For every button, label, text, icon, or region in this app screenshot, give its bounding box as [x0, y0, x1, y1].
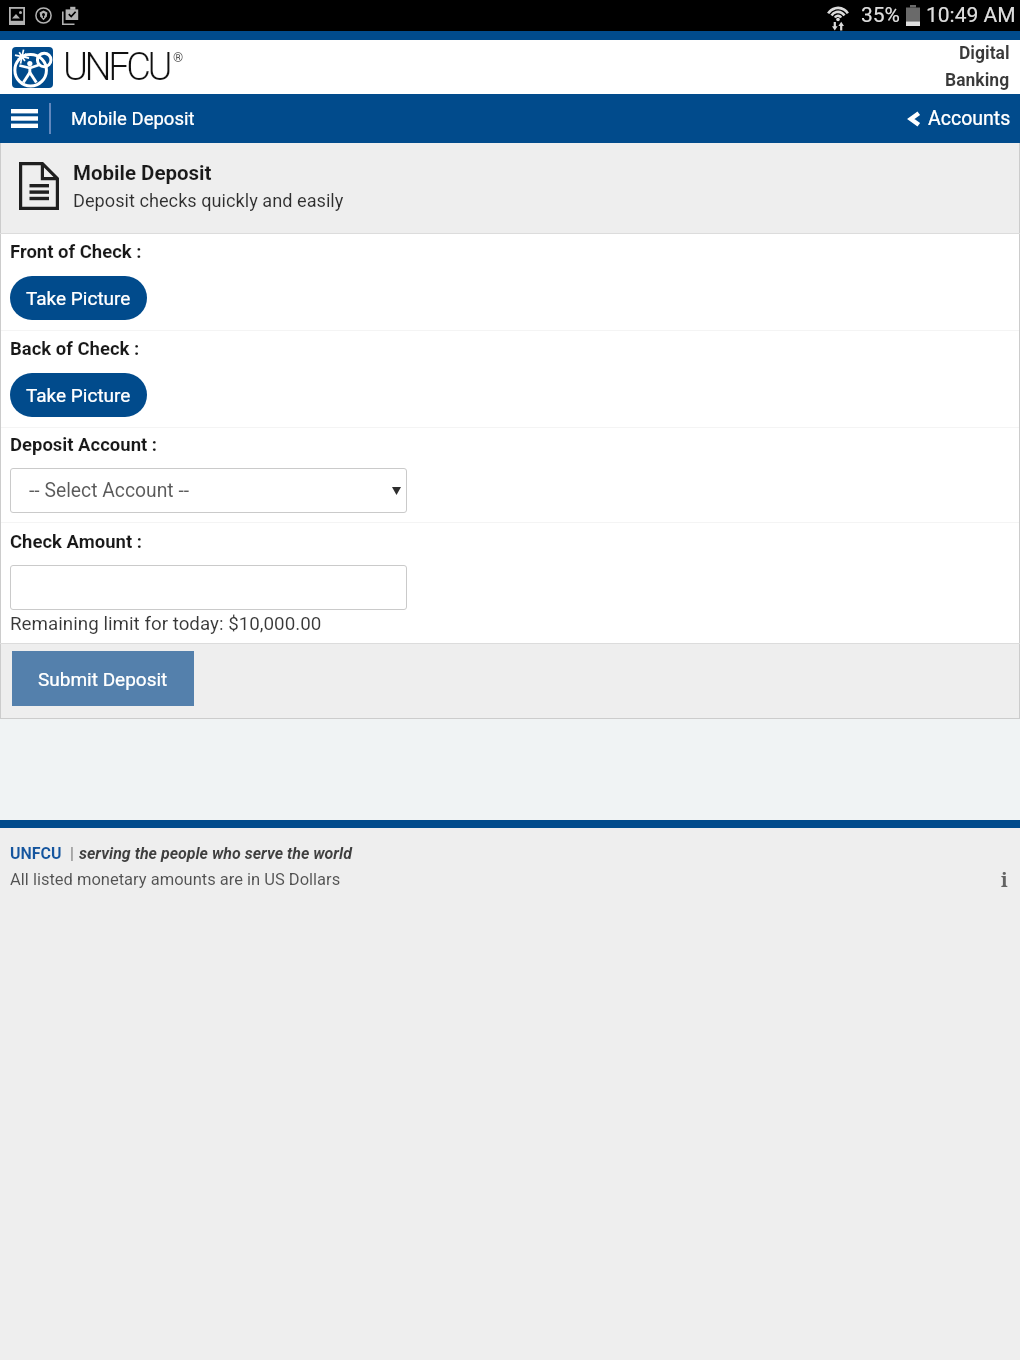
- staticText: UNFCU: [10, 844, 62, 863]
- staticText: |: [70, 844, 74, 863]
- button[interactable]: Take Picture: [10, 276, 147, 320]
- staticText: 10:49 AM: [926, 3, 1016, 28]
- staticText: All listed monetary amounts are in US Do…: [10, 870, 341, 889]
- button[interactable]: Accounts: [908, 94, 1020, 143]
- staticText: Mobile Deposit: [71, 108, 195, 130]
- staticText: Submit Deposit: [38, 668, 168, 690]
- button[interactable]: [10, 565, 407, 610]
- staticText: Banking: [945, 70, 1010, 91]
- button[interactable]: -- Select Account --: [10, 468, 407, 513]
- button[interactable]: Take Picture: [10, 373, 147, 417]
- staticText: UNFCU: [63, 45, 170, 90]
- staticText: 35%: [861, 3, 900, 28]
- staticText: Accounts: [928, 107, 1011, 130]
- staticText: i: [1001, 867, 1008, 893]
- staticText: Deposit checks quickly and easily: [73, 190, 344, 211]
- staticText: Take Picture: [26, 384, 131, 406]
- staticText: Mobile Deposit: [73, 161, 212, 185]
- staticText: -- Select Account --: [29, 479, 190, 502]
- button[interactable]: Open navigation menu: [0, 94, 49, 143]
- button[interactable]: Submit Deposit: [12, 651, 194, 706]
- staticText: Front of Check :: [10, 241, 142, 263]
- staticText: Back of Check :: [10, 338, 140, 360]
- staticText: Remaining limit for today: $10,000.00: [10, 613, 322, 635]
- staticText: serving the people who serve the world: [79, 844, 352, 863]
- staticText: Check Amount :: [10, 531, 142, 553]
- staticText: Digital: [959, 43, 1010, 64]
- staticText: Deposit Account :: [10, 434, 158, 456]
- staticText: ®: [173, 50, 184, 65]
- staticText: Take Picture: [26, 287, 131, 309]
- button[interactable]: Information: [1001, 867, 1008, 893]
